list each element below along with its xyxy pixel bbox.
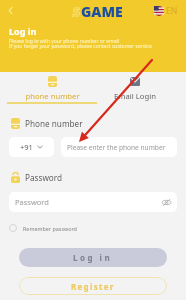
staticText: Please log in with your phone number or … <box>9 38 120 45</box>
staticText: 5 <box>72 2 81 21</box>
staticText: phone number <box>25 91 80 101</box>
staticText: Log in <box>9 25 37 37</box>
staticText: +91 <box>20 142 33 152</box>
staticText: GAME <box>81 2 123 21</box>
staticText: Email Login <box>114 91 156 101</box>
button[interactable]: Log in <box>19 248 167 267</box>
staticText: Log in <box>73 252 113 263</box>
staticText: Please enter the phone number <box>67 143 166 152</box>
staticText: If you forget your password, please cont… <box>9 43 152 50</box>
button[interactable]: Password <box>9 192 177 212</box>
staticText: Register <box>71 281 115 292</box>
staticText: Remember password <box>23 225 77 232</box>
staticText: EN <box>166 5 178 17</box>
button[interactable]: Please enter the phone number <box>61 137 177 157</box>
button[interactable]: EN <box>154 5 178 17</box>
button[interactable]: phone number <box>7 76 97 101</box>
staticText: Password <box>15 197 49 207</box>
staticText: Phone number <box>25 118 83 129</box>
button[interactable]: Register <box>19 277 167 295</box>
button[interactable]: Email Login <box>94 77 176 101</box>
button[interactable]: +91 <box>9 137 54 157</box>
button[interactable]: Remember password <box>9 224 77 232</box>
button[interactable]: Show password <box>161 197 171 207</box>
staticText: Password <box>25 172 63 183</box>
staticText: 5 <box>72 2 81 21</box>
button[interactable]: Back <box>3 3 17 17</box>
